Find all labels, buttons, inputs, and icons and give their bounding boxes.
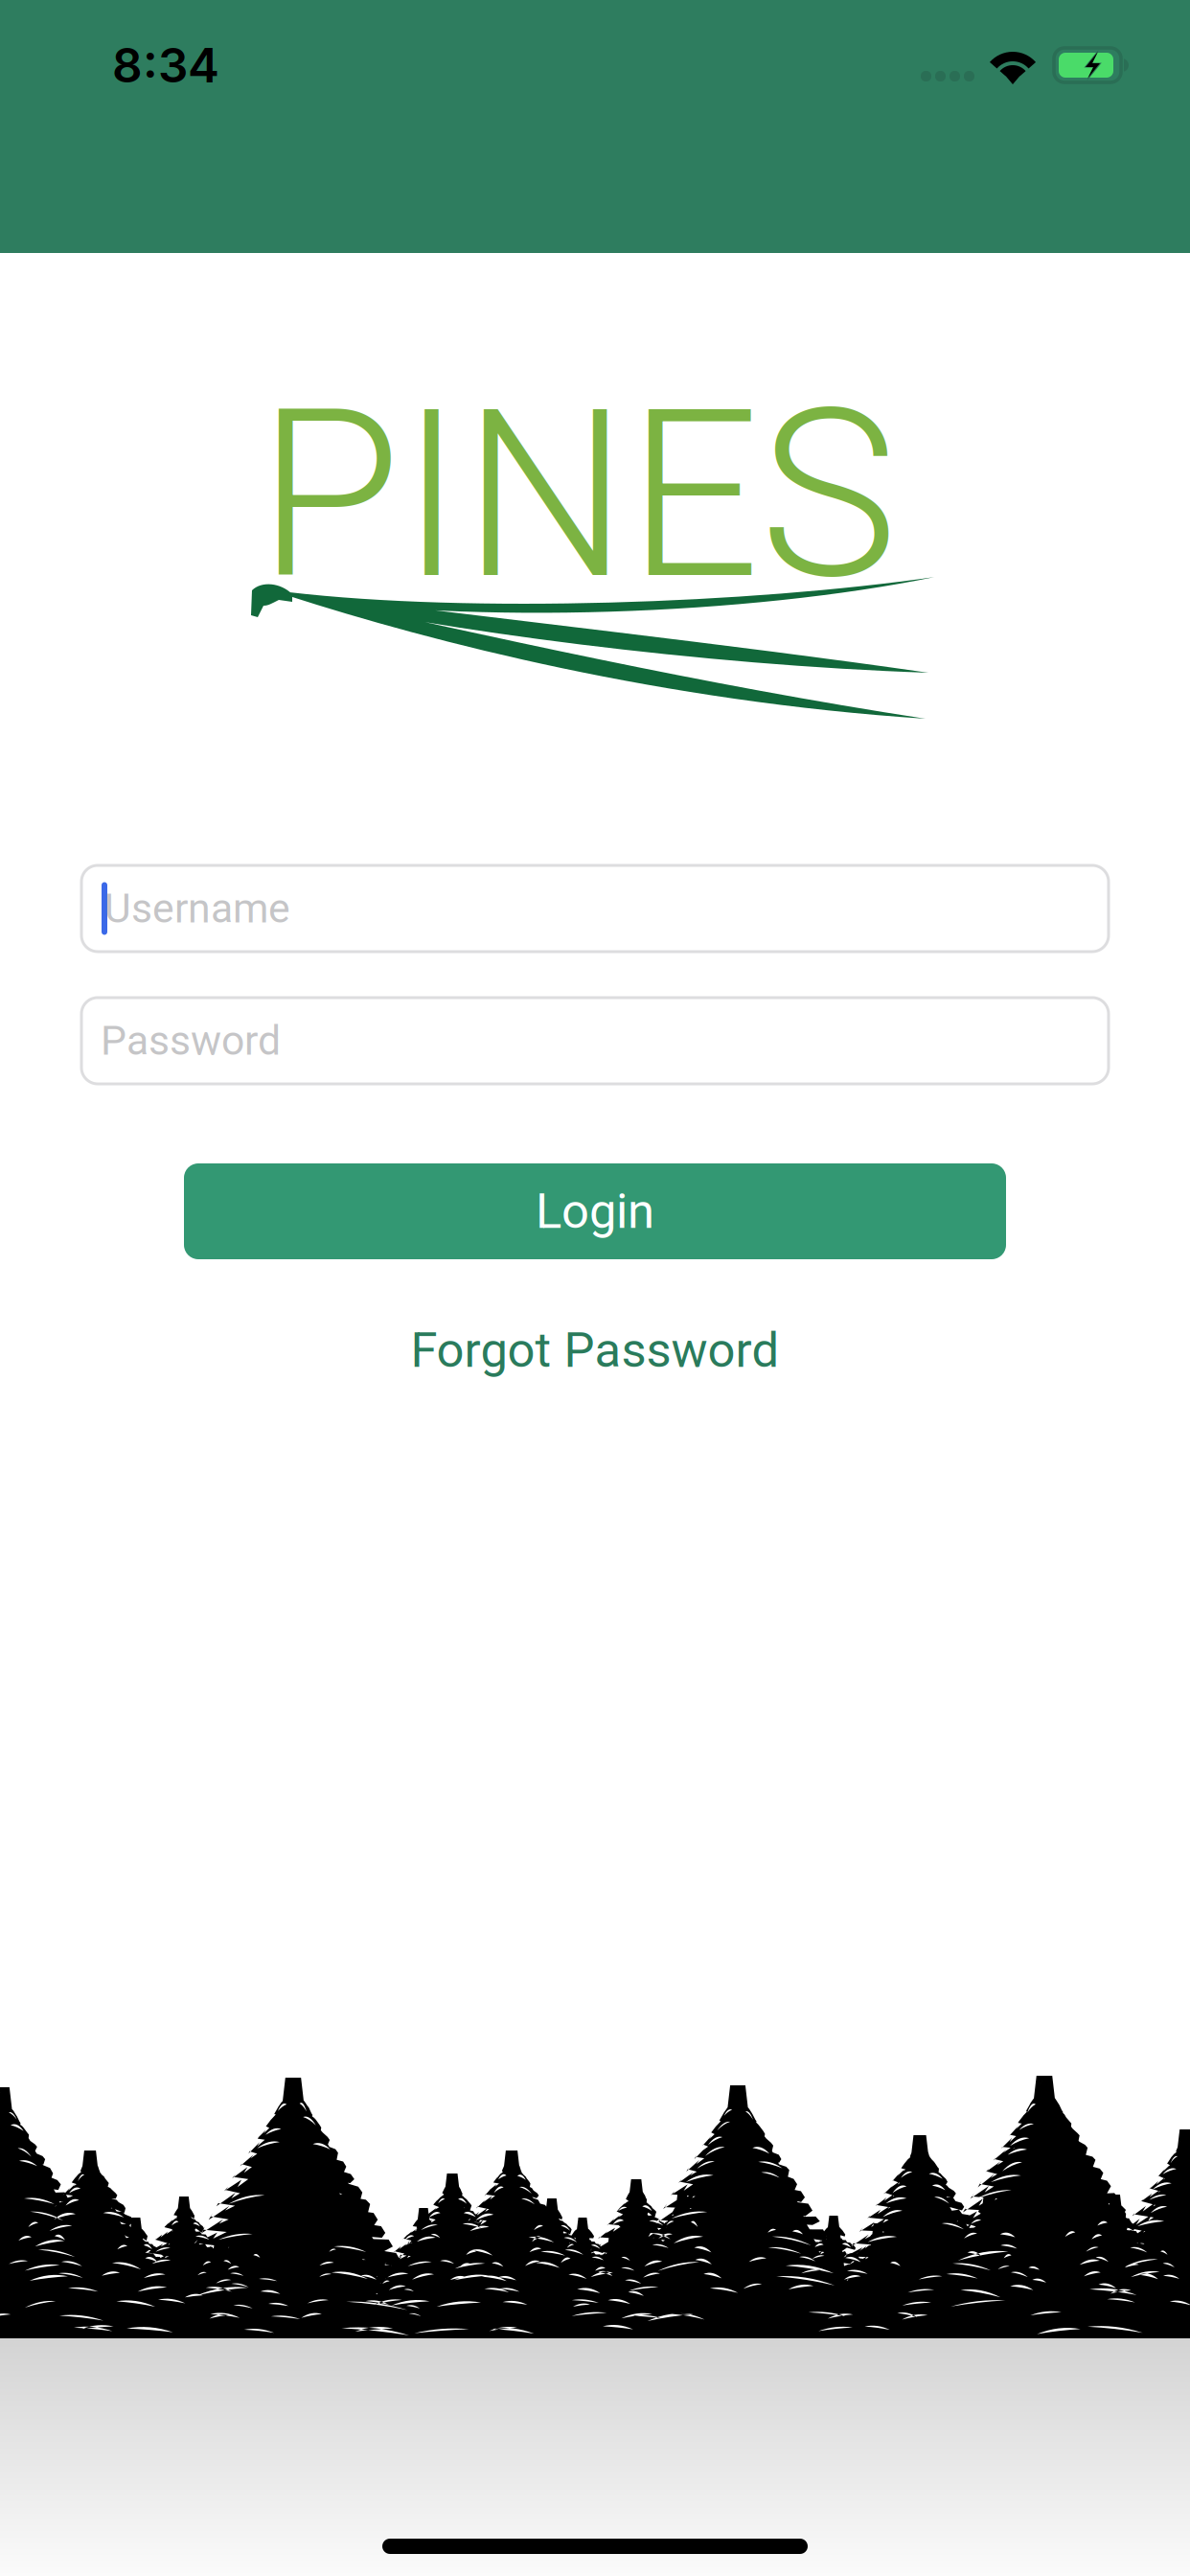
staticText: Password [101, 1017, 281, 1065]
button[interactable]: Username [81, 865, 1109, 952]
staticText: Username [104, 885, 290, 932]
staticText: Forgot Password [411, 1322, 779, 1379]
button[interactable]: Password [81, 998, 1109, 1084]
staticText: Login [536, 1183, 654, 1240]
staticText: 8:34 [112, 37, 219, 94]
staticText: PINES [258, 359, 898, 632]
button[interactable]: Forgot Password [355, 1316, 835, 1385]
button[interactable]: Login [184, 1163, 1006, 1259]
